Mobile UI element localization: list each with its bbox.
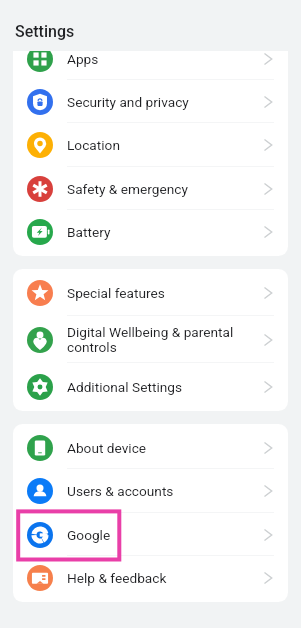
staticText: Users & accounts [67,483,250,499]
staticText: Google [67,527,250,543]
staticText: Help & feedback [67,570,250,586]
button[interactable]: Special features [13,269,288,316]
staticText: Battery [67,224,250,240]
button[interactable]: About device [13,426,288,469]
staticText: Apps [67,51,250,67]
staticText: Safety & emergency [67,181,250,197]
button[interactable]: Google [13,513,288,556]
button[interactable]: Location [13,123,288,167]
button[interactable]: Additional Settings [13,363,288,411]
staticText: Digital Wellbeing & parental controls [67,324,250,355]
button[interactable]: Security and privacy [13,80,288,123]
staticText: Location [67,137,250,153]
button[interactable]: Digital Wellbeing [13,316,288,363]
button[interactable]: Help and feedback [13,556,288,600]
staticText: About device [67,440,250,456]
staticText: Special features [67,285,250,301]
staticText: Additional Settings [67,379,250,395]
button[interactable]: Apps [13,51,288,80]
staticText: Settings [15,22,75,41]
button[interactable]: Battery [13,210,288,254]
button[interactable]: Safety and emergency [13,167,288,210]
button[interactable]: Users and accounts [13,469,288,513]
staticText: Security and privacy [67,94,250,110]
